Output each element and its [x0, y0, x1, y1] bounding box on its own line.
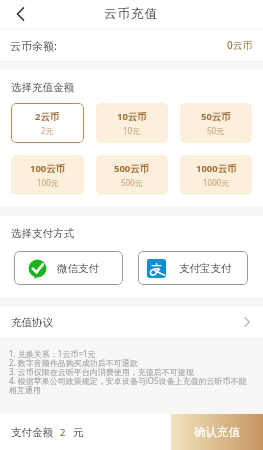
staticText: 微信支付 [57, 262, 99, 275]
staticText: 支付金额 [11, 426, 53, 439]
button[interactable]: 50云币 [180, 103, 252, 143]
staticText: 0云币 [227, 38, 253, 52]
staticText: 100云币 [30, 162, 66, 175]
staticText: 2元 [41, 125, 54, 136]
staticText: 元 [73, 426, 84, 439]
staticText: 50云币 [201, 110, 231, 123]
staticText: 100元 [37, 177, 59, 188]
staticText: 1000元 [203, 177, 230, 188]
staticText: 500云币 [114, 162, 150, 175]
staticText: 选择充值金额 [11, 81, 74, 94]
staticText: 500元 [121, 177, 143, 188]
staticText: 选择支付方式 [11, 227, 74, 240]
staticText: 云币余额: [10, 38, 57, 53]
button[interactable]: 微信支付 [14, 251, 123, 285]
button[interactable]: 确认充值 [171, 414, 263, 450]
staticText: 1000云币 [196, 162, 237, 175]
button[interactable]: 2云币 [11, 103, 84, 143]
staticText: 50元 [207, 125, 225, 136]
button[interactable]: 充值协议 [0, 307, 263, 337]
staticText: 充值协议 [11, 316, 53, 329]
staticText: 支付宝支付 [179, 262, 232, 275]
staticText: 2云币 [35, 110, 60, 123]
button[interactable]: 100云币 [11, 155, 84, 195]
staticText: 10元 [123, 125, 141, 136]
button[interactable]: 10云币 [96, 103, 168, 143]
staticText: 3. 云币仅限在云听平台内消费使用，充值后不可提现 [9, 366, 194, 377]
button[interactable]: 支付宝支付 [138, 251, 248, 285]
staticText: 云币充值 [104, 6, 159, 22]
button[interactable]: Back [0, 0, 40, 28]
staticText: 1. 兑换关系：1云币=1元 [9, 348, 96, 359]
staticText: 10云币 [117, 110, 147, 123]
staticText: 2 [60, 426, 66, 439]
button[interactable]: 500云币 [96, 155, 168, 195]
staticText: 4. 根据苹果公司政策规定，安卓设备与iOS设备上充值的云听币不能相互通用 [9, 375, 254, 395]
staticText: 2. 数字音频作品购买成功后不可退款 [9, 357, 138, 368]
button[interactable]: 1000云币 [180, 155, 252, 195]
staticText: 确认充值 [194, 425, 240, 439]
